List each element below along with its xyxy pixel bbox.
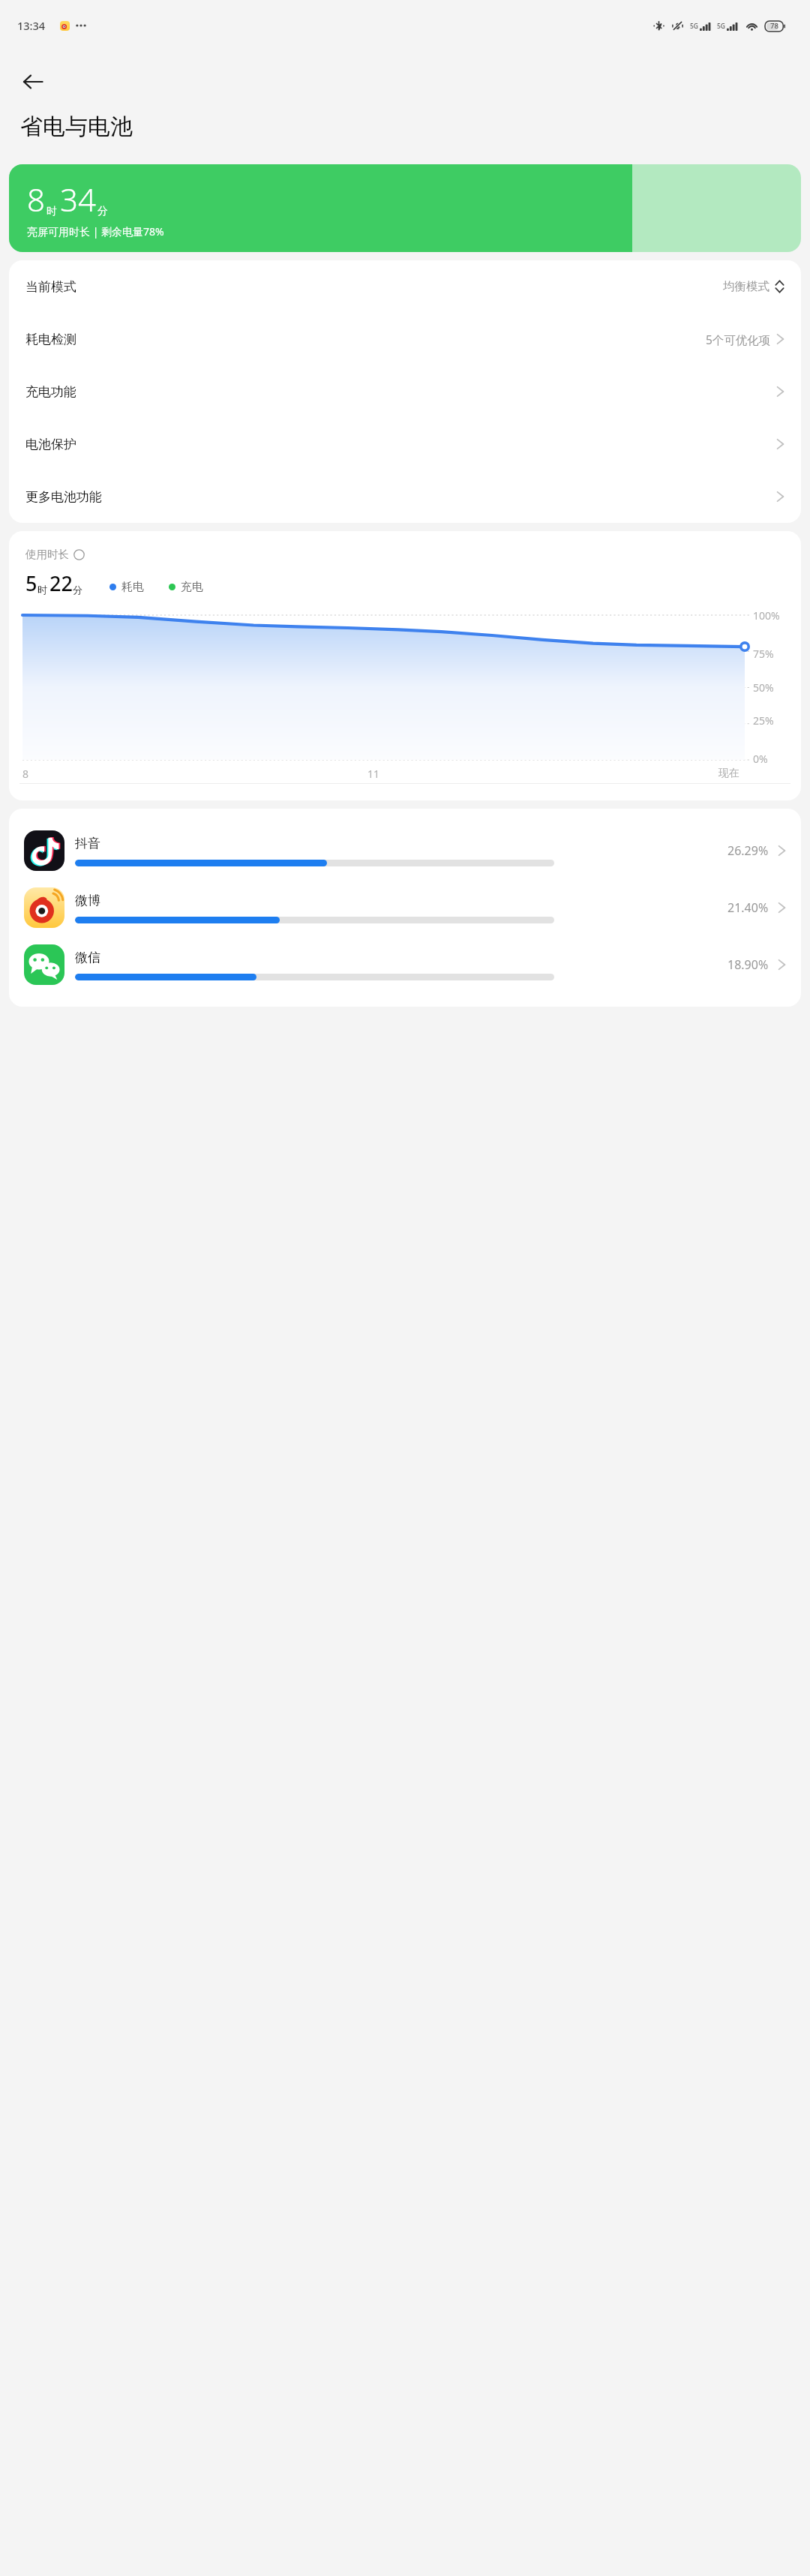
button[interactable]: 8 [9, 164, 801, 252]
staticText: 充电功能 [25, 384, 76, 400]
staticText: 26.29% [727, 842, 769, 859]
staticText: 更多电池功能 [25, 489, 102, 505]
button[interactable]: 微信 [9, 936, 801, 993]
staticText: 耗电检测 [25, 332, 76, 347]
staticText: 18.90% [727, 956, 769, 973]
staticText: 时 [46, 205, 57, 218]
staticText: 电池保护 [25, 437, 76, 452]
staticText: 22 [49, 569, 73, 597]
staticText: 微博 [75, 893, 100, 908]
button[interactable]: 耗电检测 [9, 313, 801, 365]
button[interactable]: 充电功能 [9, 365, 801, 418]
staticText: 0% [753, 752, 768, 766]
staticText: 8 [27, 178, 45, 221]
staticText: 100% [753, 608, 780, 623]
staticText: 均衡模式 [723, 279, 769, 294]
staticText: 5G [717, 22, 726, 31]
staticText: 亮屏可用时长 | 剩余电量78% [27, 224, 164, 239]
staticText: 11 [367, 767, 380, 781]
staticText: 50% [753, 680, 774, 695]
staticText: 抖音 [75, 836, 100, 851]
staticText: 现在 [718, 767, 739, 780]
staticText: 5G [690, 22, 699, 31]
staticText: 省电与电池 [20, 113, 133, 141]
staticText: 使用时长 [25, 548, 69, 561]
button[interactable]: 更多电池功能 [9, 470, 801, 523]
staticText: 5个可优化项 [706, 332, 771, 347]
button[interactable]: Back [12, 61, 54, 103]
staticText: 75% [753, 647, 774, 661]
staticText: 21.40% [727, 899, 769, 916]
button[interactable]: 抖音 [9, 822, 801, 879]
staticText: 13:34 [17, 18, 46, 33]
staticText: 8 [22, 767, 29, 781]
button[interactable]: 当前模式 [9, 260, 801, 313]
staticText: 分 [97, 205, 108, 218]
staticText: 微信 [75, 950, 100, 965]
staticText: 34 [60, 178, 96, 221]
staticText: 时 [37, 584, 47, 596]
staticText: 5 [25, 569, 37, 597]
button[interactable]: 微博 [9, 879, 801, 936]
button[interactable]: 电池保护 [9, 418, 801, 470]
staticText: 耗电 [121, 580, 144, 594]
staticText: 25% [753, 713, 774, 728]
staticText: 78 [770, 21, 778, 31]
staticText: 充电 [181, 580, 203, 594]
staticText: 当前模式 [25, 279, 76, 295]
staticText: 分 [73, 584, 82, 596]
